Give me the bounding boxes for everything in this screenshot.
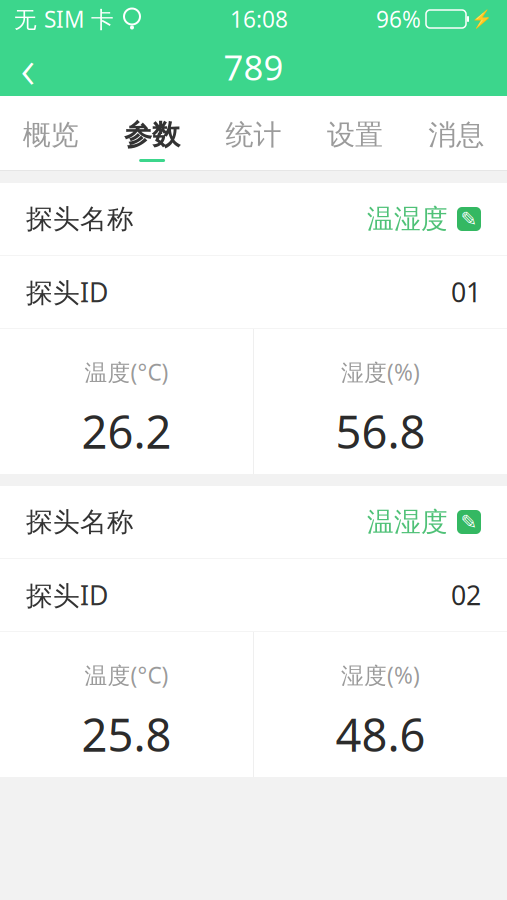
staticText: 探头ID (26, 274, 108, 310)
staticText: 温度(°C) (84, 660, 168, 690)
staticText: 16:08 (230, 4, 288, 34)
button[interactable]: 设置 (304, 96, 406, 170)
staticText: 探头ID (26, 577, 108, 613)
button[interactable]: 消息 (406, 96, 507, 170)
staticText: 48.6 (335, 704, 425, 764)
button[interactable]: Edit probe name (448, 510, 481, 534)
staticText: ‹ (20, 30, 35, 104)
staticText: 789 (223, 44, 283, 90)
staticText: 01 (451, 274, 481, 310)
button[interactable]: Back (0, 38, 56, 96)
button[interactable]: 概览 (0, 96, 101, 170)
staticText: 26.2 (81, 401, 171, 461)
staticText: 温湿度 (367, 506, 448, 538)
staticText: ✎ (460, 511, 477, 533)
staticText: 参数 (124, 118, 180, 152)
staticText: 消息 (428, 118, 484, 152)
staticText: 无 SIM 卡 (14, 4, 114, 34)
staticText: 概览 (23, 118, 79, 152)
staticText: 湿度(%) (341, 357, 420, 387)
button[interactable]: 统计 (203, 96, 304, 170)
staticText: 96% (376, 4, 421, 34)
button[interactable]: Edit probe name (448, 207, 481, 231)
staticText: 02 (451, 577, 481, 613)
staticText: 56.8 (335, 401, 425, 461)
staticText: 探头名称 (26, 203, 134, 235)
staticText: ⚡ (471, 9, 493, 29)
staticText: 探头名称 (26, 506, 134, 538)
staticText: 温度(°C) (84, 357, 168, 387)
staticText: ✎ (460, 208, 477, 230)
staticText: 25.8 (81, 704, 171, 764)
button[interactable]: 参数 (101, 96, 203, 170)
staticText: 统计 (225, 118, 281, 152)
staticText: 温湿度 (367, 203, 448, 235)
staticText: 设置 (327, 118, 383, 152)
staticText: 湿度(%) (341, 660, 420, 690)
